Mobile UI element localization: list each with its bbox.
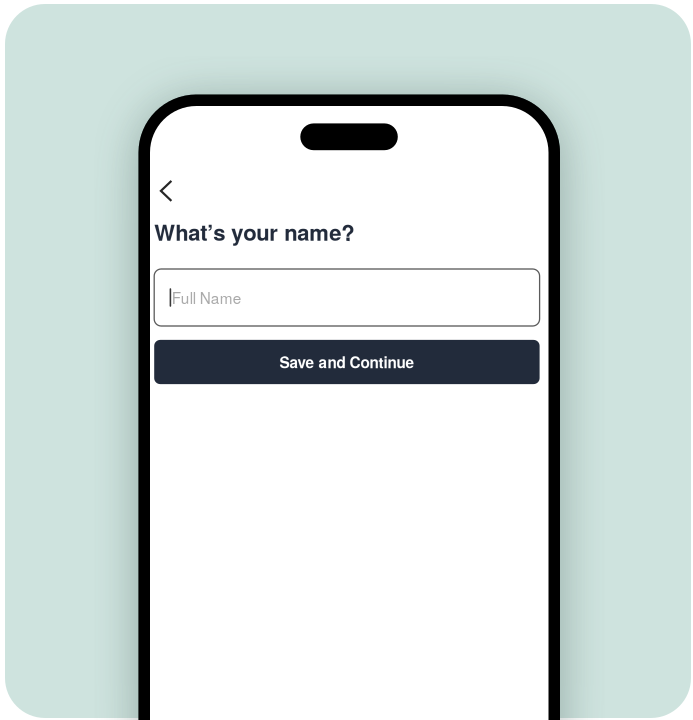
button[interactable]: Back	[154, 168, 188, 213]
staticText: What’s your name?	[154, 216, 354, 247]
button[interactable]: Full Name	[154, 269, 540, 326]
button[interactable]: Save and Continue	[154, 340, 540, 384]
staticText: Full Name	[172, 286, 242, 308]
staticText: Save and Continue	[279, 351, 414, 373]
